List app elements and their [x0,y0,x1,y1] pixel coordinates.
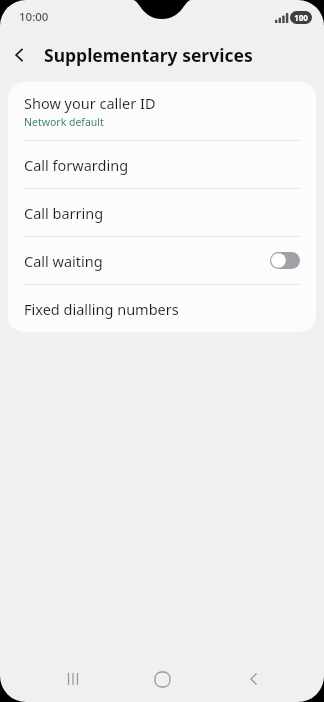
button[interactable]: Call waiting [8,237,316,284]
staticText: 100 [294,12,308,23]
staticText: Show your caller ID [24,93,156,113]
button[interactable]: Show your caller ID [8,82,316,140]
button[interactable]: Recents [55,661,91,697]
staticText: Supplementary services [44,43,253,67]
button[interactable]: Home [144,661,180,697]
button[interactable]: Call barring [8,189,316,236]
staticText: Fixed dialling numbers [24,299,179,319]
staticText: 10:00 [19,9,49,25]
button[interactable]: Call waiting toggle [270,252,300,269]
button[interactable]: Fixed dialling numbers [8,285,316,332]
staticText: Network default [24,115,104,129]
button[interactable]: Back [236,661,272,697]
staticText: Call barring [24,203,104,223]
staticText: Call waiting [24,251,270,271]
staticText: Call forwarding [24,155,129,175]
button[interactable]: Back [0,35,40,75]
button[interactable]: Call forwarding [8,141,316,188]
